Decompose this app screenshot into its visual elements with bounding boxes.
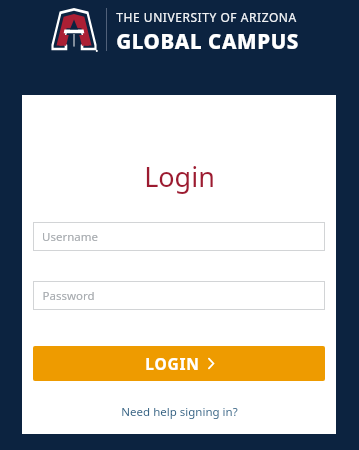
button[interactable]: Username xyxy=(33,222,325,251)
button[interactable]: Password xyxy=(33,281,325,310)
button[interactable]: Need help signing in? xyxy=(115,402,244,422)
staticText: THE UNIVERSITY OF ARIZONA xyxy=(116,9,297,25)
staticText: LOGIN xyxy=(145,353,200,374)
staticText: GLOBAL CAMPUS xyxy=(116,27,299,55)
staticText: Login xyxy=(144,158,215,195)
staticText: Password xyxy=(42,288,95,304)
staticText: Need help signing in? xyxy=(121,404,238,420)
staticText: Username xyxy=(42,229,98,245)
button[interactable]: LOGIN xyxy=(33,346,325,381)
